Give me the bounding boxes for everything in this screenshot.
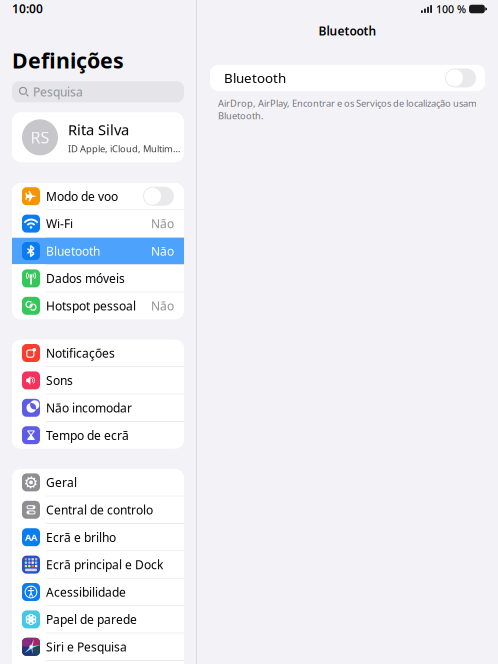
staticText: AirDrop, AirPlay, Encontrar e os Serviço… bbox=[218, 97, 477, 122]
button[interactable]: Tempo de ecrã bbox=[12, 422, 184, 448]
staticText: Rita Silva bbox=[68, 120, 129, 139]
staticText: ID Apple, iCloud, Multiméd... bbox=[68, 142, 184, 155]
staticText: Sons bbox=[46, 372, 73, 388]
staticText: Não bbox=[151, 298, 174, 314]
staticText: Ecrã e brilho bbox=[46, 529, 116, 545]
staticText: Não incomodar bbox=[46, 400, 132, 416]
button[interactable]: Acessibilidade bbox=[12, 579, 184, 605]
staticText: Bluetooth bbox=[224, 69, 286, 87]
staticText: Não bbox=[151, 216, 174, 232]
button[interactable]: Modo de voo bbox=[12, 183, 184, 209]
staticText: Wi-Fi bbox=[46, 216, 73, 232]
staticText: Papel de parede bbox=[46, 611, 137, 627]
button[interactable]: Não incomodar bbox=[12, 394, 184, 421]
staticText: Acessibilidade bbox=[46, 584, 126, 600]
button[interactable]: AA bbox=[12, 524, 184, 550]
staticText: Não bbox=[151, 243, 174, 259]
staticText: Central de controlo bbox=[46, 502, 153, 518]
staticText: Bluetooth bbox=[318, 23, 376, 39]
button[interactable]: Wi-Fi bbox=[12, 210, 184, 237]
staticText: 100 % bbox=[436, 2, 466, 16]
staticText: 10:00 bbox=[12, 0, 43, 16]
staticText: Modo de voo bbox=[46, 188, 118, 204]
staticText: Hotspot pessoal bbox=[46, 298, 136, 314]
staticText: Dados móveis bbox=[46, 270, 125, 286]
staticText: Geral bbox=[46, 474, 77, 490]
button[interactable]: Hotspot pessoal bbox=[12, 292, 184, 319]
staticText: Siri e Pesquisa bbox=[46, 639, 127, 655]
button[interactable]: Geral bbox=[12, 469, 184, 496]
button[interactable]: Dados móveis bbox=[12, 265, 184, 292]
staticText: Definições bbox=[12, 46, 124, 74]
button[interactable]: Pesquisa bbox=[12, 81, 184, 102]
button[interactable]: Sons bbox=[12, 367, 184, 394]
staticText: Pesquisa bbox=[33, 84, 83, 100]
staticText: RS bbox=[30, 127, 49, 148]
button[interactable]: Bluetooth bbox=[197, 23, 498, 39]
button[interactable]: Papel de parede bbox=[12, 606, 184, 633]
button[interactable]: Bluetooth bbox=[12, 238, 184, 264]
button[interactable]: Notificações bbox=[12, 340, 184, 366]
button[interactable]: RS bbox=[12, 112, 184, 162]
button[interactable]: Siri e Pesquisa bbox=[12, 633, 184, 660]
staticText: Ecrã principal e Dock bbox=[46, 557, 163, 573]
staticText: Bluetooth bbox=[46, 243, 100, 259]
staticText: Tempo de ecrã bbox=[46, 427, 129, 443]
button[interactable]: Central de controlo bbox=[12, 496, 184, 523]
button[interactable]: Ecrã principal e Dock bbox=[12, 551, 184, 578]
staticText: AA bbox=[25, 531, 37, 543]
staticText: Notificações bbox=[46, 345, 115, 361]
